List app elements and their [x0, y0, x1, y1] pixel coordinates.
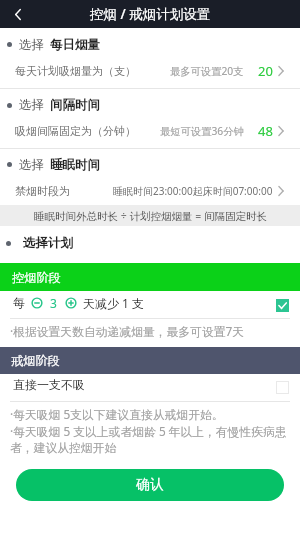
button[interactable]: Back — [4, 0, 31, 28]
staticText: 选择计划 — [23, 235, 73, 251]
staticText: 睡眠时间23:00:00起床时间07:00:00 — [113, 184, 273, 198]
staticText: ·每天吸烟 5 支以上或者烟龄 5 年以上，有慢性疾病患 — [10, 423, 287, 439]
staticText: 3 — [50, 295, 57, 311]
staticText: 睡眠时间 — [50, 157, 100, 173]
button[interactable]: 吸烟间隔固定为（分钟） — [0, 118, 300, 144]
staticText: 控烟阶段 — [12, 270, 61, 285]
button[interactable]: 每 — [0, 292, 300, 313]
staticText: 每日烟量 — [50, 37, 100, 53]
staticText: 间隔时间 — [50, 97, 100, 113]
staticText: 禁烟时段为 — [15, 184, 70, 198]
staticText: 戒烟阶段 — [11, 353, 60, 368]
staticText: 天减少 1 支 — [83, 295, 145, 311]
button[interactable]: Increase — [65, 297, 77, 309]
staticText: 选择 — [19, 157, 44, 173]
button[interactable]: 控烟阶段 selected — [276, 299, 289, 312]
button[interactable]: 禁烟时段为 — [0, 178, 300, 204]
staticText: 最多可设置20支 — [170, 64, 244, 78]
button[interactable]: 每天计划吸烟量为（支） — [0, 58, 300, 84]
staticText: 者，建议从控烟开始 — [10, 441, 117, 456]
staticText: 每 — [13, 295, 25, 310]
staticText: 确认 — [136, 476, 164, 494]
button[interactable]: 戒烟阶段 unselected — [276, 381, 289, 394]
staticText: 睡眠时间外总时长 ÷ 计划控烟烟量 = 间隔固定时长 — [34, 209, 267, 223]
staticText: 每天计划吸烟量为（支） — [15, 64, 136, 78]
staticText: 选择 — [19, 97, 44, 113]
staticText: ·根据设置天数自动递减烟量，最多可设置7天 — [10, 323, 245, 339]
staticText: 选择 — [19, 37, 44, 53]
button[interactable]: 直接一支不吸 — [0, 375, 300, 394]
staticText: 吸烟间隔固定为（分钟） — [15, 124, 136, 138]
button[interactable]: 确认 — [16, 469, 284, 501]
staticText: ·每天吸烟 5支以下建议直接从戒烟开始。 — [10, 406, 224, 422]
button[interactable]: Decrease — [31, 297, 43, 309]
staticText: 直接一支不吸 — [13, 377, 85, 392]
staticText: 48 — [258, 122, 273, 140]
staticText: 最短可设置36分钟 — [160, 124, 244, 138]
staticText: 20 — [258, 62, 273, 80]
staticText: 控烟 / 戒烟计划设置 — [90, 5, 211, 23]
